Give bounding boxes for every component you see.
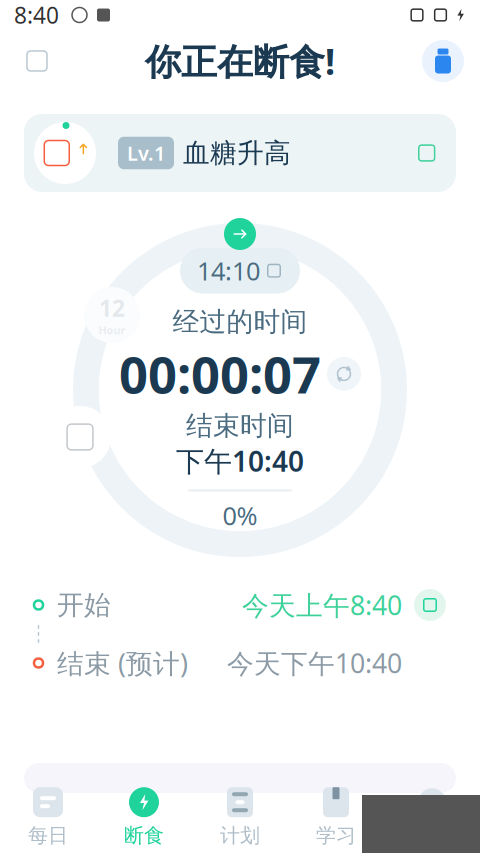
staticText: 开始: [57, 589, 111, 621]
button[interactable]: 每日: [0, 781, 96, 853]
button[interactable]: 开始: [34, 588, 446, 622]
button[interactable]: 结束 (预计): [34, 646, 446, 680]
staticText: 今天下午10:40: [227, 645, 402, 681]
button[interactable]: 断食: [96, 781, 192, 853]
staticText: 经过的时间: [172, 305, 307, 338]
staticText: Lv.1: [127, 140, 165, 166]
staticText: 你正在断食!: [145, 37, 335, 85]
staticText: 今天上午8:40: [242, 587, 402, 623]
staticText: 00:00:07: [119, 340, 321, 408]
button[interactable]: 我的: [384, 781, 480, 853]
staticText: 下午10:40: [176, 442, 304, 479]
staticText: 每日: [28, 823, 68, 848]
button[interactable]: 分享: [14, 38, 60, 84]
staticText: 0%: [222, 498, 257, 532]
button[interactable]: 学习: [288, 781, 384, 853]
button[interactable]: 重置: [327, 357, 361, 391]
button[interactable]: 计划: [192, 781, 288, 853]
button[interactable]: Lv.1: [24, 114, 456, 192]
staticText: 8:40: [14, 0, 59, 30]
staticText: 12: [99, 293, 125, 323]
staticText: 血糖升高: [183, 137, 291, 169]
staticText: 学习: [316, 823, 356, 848]
staticText: Hour: [98, 323, 125, 337]
button[interactable]: 下一阶段: [224, 218, 256, 250]
button[interactable]: 喝水: [420, 38, 466, 84]
staticText: 结束 (预计): [57, 645, 188, 681]
staticText: 14:10: [197, 254, 260, 287]
staticText: 断食: [124, 823, 164, 848]
staticText: 结束时间: [186, 410, 294, 442]
staticText: 计划: [220, 823, 260, 848]
